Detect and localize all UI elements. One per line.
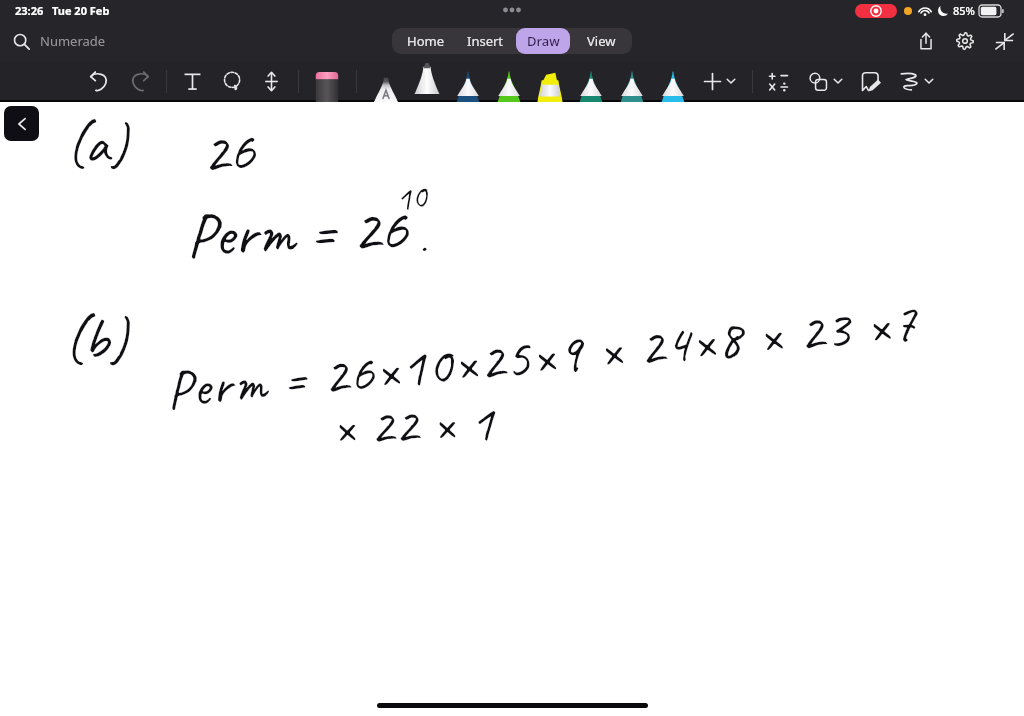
staticText: 23:26 [15,3,44,18]
button[interactable]: Insert space [255,65,287,97]
button[interactable]: Draw [516,28,570,54]
button[interactable]: Sticky note [854,65,886,97]
button[interactable]: Home [396,28,454,54]
staticText: . [420,220,427,263]
staticText: View [587,32,616,50]
button[interactable]: Eraser [308,71,346,102]
button[interactable]: Ink to shape [894,65,926,97]
button[interactable]: Teal pen [572,71,610,102]
button[interactable]: Black pen (selected) [408,63,446,94]
button[interactable]: Lasso select [216,65,248,97]
button[interactable]: Collapse ribbon [988,25,1020,57]
button[interactable]: Cyan pen [654,71,692,102]
button[interactable]: Green pen [490,71,528,102]
button[interactable]: View [574,28,628,54]
staticText: (a) [66,108,128,179]
button[interactable]: Ink options [919,71,939,91]
staticText: Tue 20 Feb [52,3,110,18]
button[interactable]: Sea green pen [613,71,651,102]
button[interactable]: Stop screen recording [855,4,897,18]
staticText: Perm = 26×10×25×9 × 24×8 × 23 ×7 [163,288,921,424]
staticText: Insert [467,32,504,50]
staticText: Home [407,32,444,50]
button[interactable]: Back [4,106,39,141]
button[interactable]: Yellow highlighter [531,71,569,102]
button[interactable]: Share [910,25,942,57]
button[interactable]: Pencil [367,71,405,102]
button[interactable]: Add pen [696,65,728,97]
button[interactable]: Search [5,25,37,57]
button[interactable]: Math [762,65,794,97]
staticText: (b) [64,302,128,375]
button[interactable]: Insert [458,28,512,54]
staticText: 85% [953,3,975,18]
button[interactable]: Blue pen [449,71,487,102]
button[interactable]: More pens [721,71,741,91]
button[interactable]: Text [176,65,208,97]
staticText: Numerade [40,32,106,50]
button[interactable]: Redo [123,65,155,97]
staticText: 10 [393,174,430,221]
button[interactable]: Undo [83,65,115,97]
staticText: 26 [199,112,257,189]
staticText: Draw [527,32,560,50]
staticText: Perm = 26 [185,188,409,274]
button[interactable]: Shapes [802,65,834,97]
button[interactable]: Settings [949,25,981,57]
button[interactable]: Shape options [828,71,848,91]
staticText: × 22 × 1 [331,390,496,460]
